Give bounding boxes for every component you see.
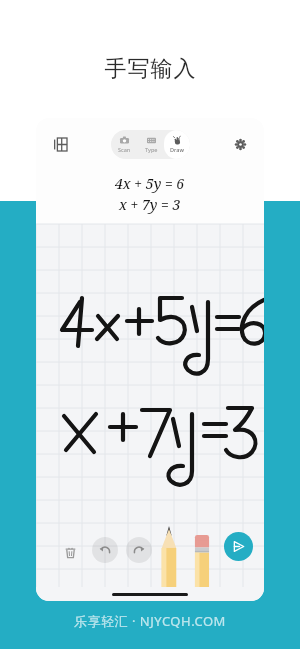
staticText: 手写输入 (104, 55, 196, 83)
staticText: x + 7y = 3 (119, 195, 181, 214)
button[interactable]: Undo (92, 537, 118, 563)
button[interactable]: Delete (58, 540, 82, 564)
staticText: Type (145, 146, 158, 153)
button[interactable]: Type (138, 130, 164, 159)
button[interactable]: Send (224, 532, 253, 561)
staticText: 乐享轻汇 · NJYCQH.COM (74, 612, 226, 630)
button[interactable]: Draw (164, 130, 190, 159)
staticText: Scan (118, 146, 131, 153)
button[interactable]: History (44, 128, 76, 160)
button[interactable]: Pen (156, 526, 182, 587)
staticText: Draw (170, 146, 184, 153)
staticText: 4x + 5y = 6 (115, 174, 185, 193)
button[interactable]: Redo (126, 537, 152, 563)
button[interactable]: Scan (111, 130, 138, 159)
button[interactable]: Settings (224, 128, 256, 160)
button[interactable]: Eraser (191, 535, 213, 587)
